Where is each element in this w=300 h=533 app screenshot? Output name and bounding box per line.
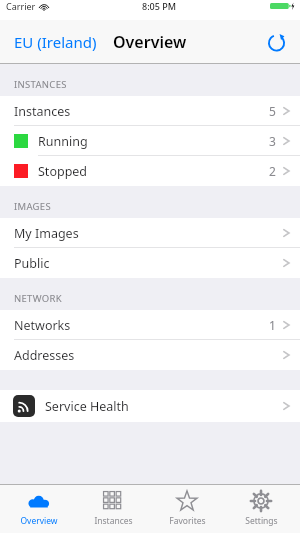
button[interactable]: Stopped [0, 156, 300, 186]
button[interactable]: Settings [226, 485, 296, 533]
button[interactable]: Addresses [0, 340, 300, 370]
staticText: 5 [269, 103, 276, 119]
button[interactable]: Running [0, 126, 300, 156]
button[interactable]: Refresh [261, 27, 292, 58]
staticText: Stopped [38, 163, 88, 180]
staticText: NETWORK [14, 292, 62, 305]
staticText: IMAGES [14, 200, 51, 213]
staticText: Overview [20, 515, 58, 527]
button[interactable]: Instances [78, 485, 148, 533]
button[interactable]: Favorites [152, 485, 222, 533]
staticText: Carrier [6, 0, 36, 12]
staticText: Networks [14, 317, 71, 334]
staticText: Settings [245, 515, 278, 527]
staticText: My Images [14, 225, 79, 242]
button[interactable]: Networks [0, 310, 300, 340]
button[interactable]: Public [0, 248, 300, 278]
button[interactable]: EU (Ireland) [8, 26, 103, 58]
staticText: Addresses [14, 347, 75, 364]
staticText: Instances [14, 103, 71, 120]
staticText: 8:05 PM [142, 0, 176, 12]
staticText: Overview [113, 31, 187, 53]
button[interactable]: My Images [0, 218, 300, 248]
staticText: Instances [94, 515, 133, 527]
staticText: 1 [269, 317, 276, 333]
staticText: Favorites [169, 515, 206, 527]
button[interactable]: Service Health [0, 390, 300, 422]
staticText: 3 [269, 133, 276, 149]
staticText: 2 [269, 163, 276, 179]
button[interactable]: Overview [4, 485, 74, 533]
staticText: EU (Ireland) [14, 32, 97, 52]
staticText: Running [38, 133, 88, 150]
staticText: Public [14, 255, 50, 272]
staticText: INSTANCES [14, 78, 67, 91]
staticText: Service Health [45, 398, 129, 415]
button[interactable]: Instances [0, 96, 300, 126]
